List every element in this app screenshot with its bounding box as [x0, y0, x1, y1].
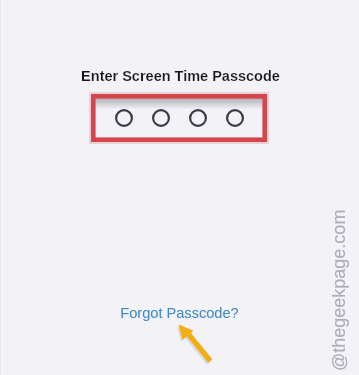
staticText: @thegeekpage.com [329, 209, 349, 371]
button[interactable]: Forgot Passcode? [0, 305, 359, 321]
staticText: Enter Screen Time Passcode [1, 68, 359, 84]
staticText: Forgot Passcode? [0, 305, 359, 321]
button[interactable]: Passcode entry field [91, 94, 267, 142]
